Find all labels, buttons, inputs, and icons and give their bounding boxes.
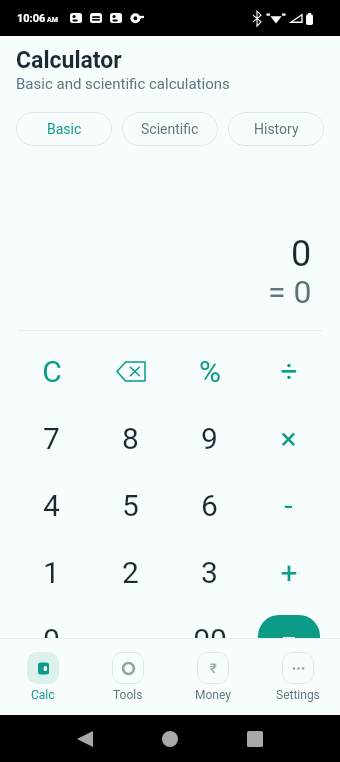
staticText: History: [254, 121, 299, 137]
staticText: 00: [193, 622, 227, 657]
staticText: Money: [195, 688, 231, 702]
button[interactable]: =: [249, 606, 328, 673]
other: Settings: [292, 662, 305, 675]
button[interactable]: Scientific: [122, 112, 218, 146]
button[interactable]: 5: [91, 472, 170, 539]
staticText: +: [280, 555, 298, 590]
other: Tools: [122, 662, 135, 675]
button[interactable]: 8: [91, 405, 170, 472]
button[interactable]: 0: [12, 606, 91, 673]
button[interactable]: Calc: [0, 639, 85, 715]
other: Back: [77, 731, 93, 747]
other: Recents: [247, 731, 263, 747]
staticText: Calc: [31, 688, 55, 702]
button[interactable]: 7: [12, 405, 91, 472]
staticText: .: [127, 622, 135, 657]
staticText: 1: [43, 555, 60, 590]
button[interactable]: Money: [170, 639, 255, 715]
button[interactable]: 2: [91, 539, 170, 606]
button[interactable]: Tools: [85, 639, 170, 715]
button[interactable]: 00: [170, 606, 249, 673]
button[interactable]: =: [258, 615, 320, 665]
staticText: 7: [43, 421, 60, 456]
staticText: Basic and scientific calculations: [16, 75, 230, 93]
button[interactable]: +: [249, 539, 328, 606]
staticText: 6: [201, 488, 218, 523]
staticText: Basic: [47, 121, 82, 137]
staticText: 2: [122, 555, 139, 590]
other: Backspace: [116, 361, 146, 382]
staticText: 0: [43, 622, 60, 657]
button[interactable]: 1: [12, 539, 91, 606]
button[interactable]: History: [228, 112, 324, 146]
staticText: ×: [280, 421, 297, 456]
staticText: 0: [291, 233, 312, 275]
staticText: 8: [122, 421, 139, 456]
other: Calc: [38, 663, 49, 674]
button[interactable]: %: [170, 338, 249, 405]
staticText: 9: [201, 421, 218, 456]
staticText: ÷: [280, 354, 298, 389]
button[interactable]: -: [249, 472, 328, 539]
staticText: C: [42, 354, 62, 389]
staticText: AM: [47, 16, 58, 24]
other: Home: [162, 731, 178, 747]
button[interactable]: ×: [249, 405, 328, 472]
button[interactable]: Basic: [16, 112, 112, 146]
button[interactable]: C: [12, 338, 91, 405]
button[interactable]: Settings: [255, 639, 340, 715]
staticText: -: [284, 488, 293, 523]
staticText: ₹: [210, 661, 217, 676]
staticText: Settings: [276, 688, 320, 702]
staticText: 4: [43, 488, 60, 523]
button[interactable]: 9: [170, 405, 249, 472]
button[interactable]: 4: [12, 472, 91, 539]
staticText: %: [199, 354, 221, 389]
staticText: 5: [122, 488, 139, 523]
button[interactable]: ÷: [249, 338, 328, 405]
staticText: Tools: [113, 688, 143, 702]
button[interactable]: 3: [170, 539, 249, 606]
staticText: 3: [201, 555, 218, 590]
button[interactable]: Backspace: [91, 338, 170, 405]
staticText: =: [281, 624, 297, 657]
staticText: Calculator: [16, 47, 122, 74]
staticText: Scientific: [141, 121, 199, 137]
button[interactable]: .: [91, 606, 170, 673]
staticText: 10:06: [17, 12, 46, 25]
staticText: = 0: [268, 273, 312, 311]
button[interactable]: 6: [170, 472, 249, 539]
